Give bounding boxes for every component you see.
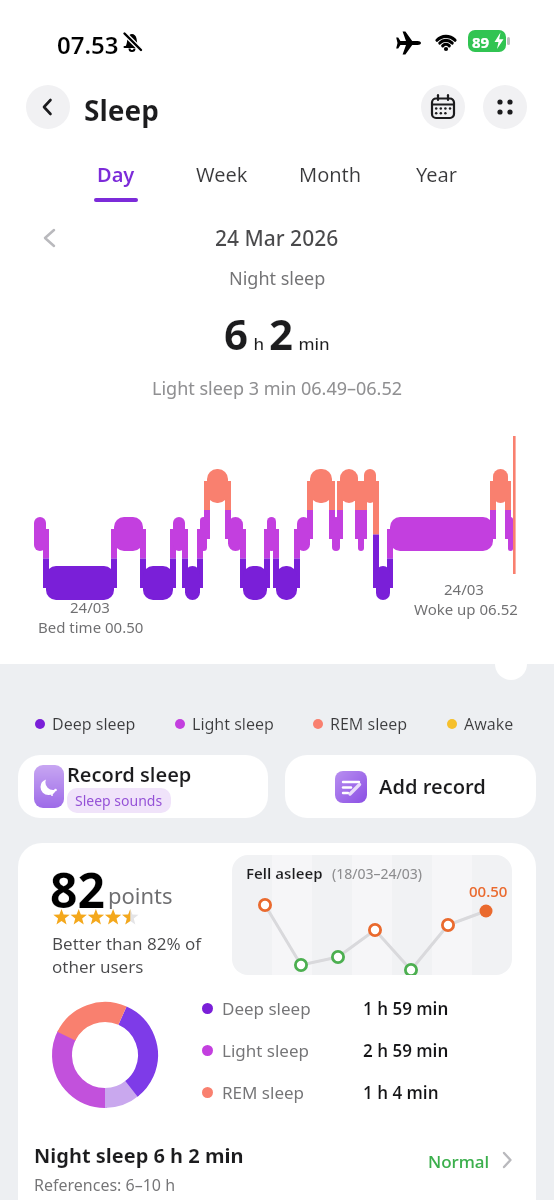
staticText: Sleep sounds [75, 791, 163, 810]
staticText: Sleep [84, 91, 159, 129]
staticText: Light sleep 3 min 06.49–06.52 [152, 376, 403, 401]
staticText: Better than 82% of [52, 932, 202, 955]
staticText: points [108, 880, 173, 910]
staticText: Add record [379, 773, 486, 800]
staticText: Year [416, 161, 458, 188]
staticText: Deep sleep [52, 713, 136, 735]
staticText: 1 h 59 min [363, 997, 449, 1020]
staticText: Day [97, 161, 135, 188]
button[interactable] [26, 85, 70, 129]
staticText: Month [299, 161, 362, 188]
staticText: Deep sleep [222, 997, 311, 1020]
staticText: 2 h 59 min [363, 1039, 449, 1062]
button[interactable]: Record sleep [18, 755, 268, 818]
staticText: Woke up 06.52 [414, 599, 518, 619]
button[interactable]: Day [71, 161, 161, 211]
button[interactable]: Month [285, 161, 375, 211]
staticText: Week [196, 161, 248, 188]
button[interactable]: Year [392, 161, 482, 211]
button[interactable]: Night sleep 6 h 2 min [18, 1140, 536, 1200]
staticText: (18/03–24/03) [332, 864, 422, 883]
staticText: 00.50 [469, 881, 508, 901]
staticText: Awake [464, 713, 514, 735]
staticText: Light sleep [192, 713, 274, 735]
button[interactable] [483, 85, 527, 129]
staticText: 24/03 [70, 597, 110, 617]
staticText: 1 h 4 min [363, 1081, 439, 1104]
staticText: Record sleep [67, 761, 192, 788]
staticText: Night sleep 6 h 2 min [34, 1142, 244, 1169]
staticText: REM sleep [330, 713, 408, 735]
staticText: Fell asleep [246, 863, 323, 883]
button[interactable]: Week [177, 161, 267, 211]
staticText: REM sleep [222, 1081, 305, 1104]
staticText: Light sleep [222, 1039, 309, 1062]
staticText: 6 [224, 305, 249, 362]
staticText: h [249, 332, 269, 355]
staticText: min [294, 332, 330, 355]
staticText: 07.53 [57, 28, 119, 61]
staticText: Bed time 00.50 [38, 617, 144, 637]
staticText: other users [52, 955, 144, 978]
staticText: Night sleep [229, 266, 326, 291]
staticText: 82 [50, 857, 105, 922]
staticText: 2 [269, 305, 294, 362]
staticText: References: 6–10 h [34, 1174, 176, 1196]
staticText: 24/03 [444, 579, 484, 599]
button[interactable] [421, 85, 465, 129]
staticText: Normal [428, 1150, 490, 1173]
staticText: 24 Mar 2026 [215, 224, 339, 253]
staticText: 89 [472, 32, 490, 52]
button[interactable]: Add record [285, 755, 536, 818]
